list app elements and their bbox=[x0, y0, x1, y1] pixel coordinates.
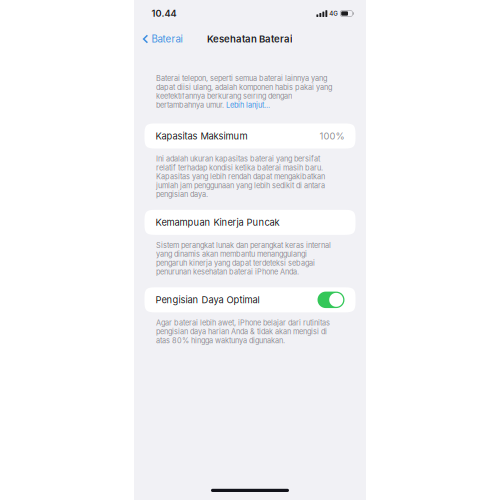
staticText: Kesehatan Baterai bbox=[207, 33, 293, 45]
staticText: Kemampuan Kinerja Puncak bbox=[155, 217, 279, 228]
staticText: Baterai telepon, seperti semua baterai l… bbox=[156, 74, 332, 109]
button[interactable]: Kemampuan Kinerja Puncak bbox=[134, 210, 366, 235]
staticText: Ini adalah ukuran kapasitas baterai yang… bbox=[156, 154, 325, 199]
staticText: 100% bbox=[319, 130, 344, 142]
staticText: Sistem perangkat lunak dan perangkat ker… bbox=[156, 241, 331, 276]
staticText: Agar baterai lebih awet, iPhone belajar … bbox=[156, 318, 330, 345]
button[interactable]: Baterai bbox=[134, 29, 190, 49]
staticText: 10.44 bbox=[151, 8, 176, 19]
staticText: Kapasitas Maksimum bbox=[155, 130, 247, 142]
staticText: Pengisian Daya Optimal bbox=[155, 294, 259, 305]
staticText: 4G bbox=[329, 10, 338, 17]
staticText: Baterai bbox=[151, 33, 182, 45]
